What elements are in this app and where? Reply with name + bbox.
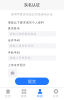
staticText: 我的	[37, 94, 43, 98]
button[interactable]: 我的	[32, 87, 48, 100]
button[interactable]: 服务	[16, 87, 32, 100]
staticText: 请按以下要求填写个人资料	[8, 21, 44, 24]
button[interactable]: 首页	[0, 87, 16, 100]
button[interactable]: 设置	[48, 87, 64, 100]
staticText: 设置	[53, 94, 59, 98]
staticText: 真实姓名	[8, 27, 20, 30]
staticText: 上传证件照片	[8, 64, 26, 67]
staticText: 请输入手机号码	[10, 56, 31, 60]
staticText: 首页	[5, 94, 11, 98]
button[interactable]: 提交	[15, 78, 49, 85]
staticText: 提交	[28, 79, 36, 84]
staticText: 服务	[21, 94, 27, 98]
staticText: 证件号码	[8, 39, 20, 42]
staticText: 手机号码	[8, 51, 20, 54]
staticText: 请输入身份证号码	[10, 44, 34, 48]
staticText: 实名认证	[24, 2, 40, 7]
staticText: 请输入您的真实姓名	[10, 32, 37, 35]
staticText: 请填写真实信息以完成身份认证	[11, 13, 53, 16]
button[interactable]: 上传照片	[8, 68, 17, 77]
